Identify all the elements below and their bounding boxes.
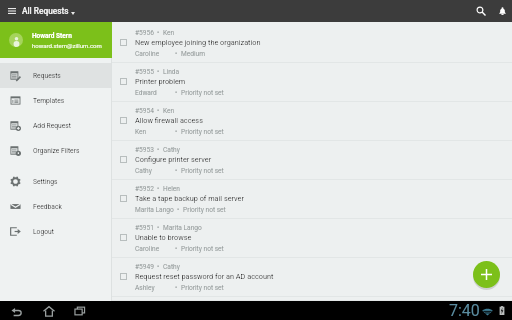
button[interactable]: Settings	[0, 169, 112, 194]
button[interactable]: Feedback	[0, 194, 112, 219]
button[interactable]: Select request	[117, 192, 130, 205]
button[interactable]: Select request	[112, 258, 512, 297]
staticText: Request reset password for an AD account	[135, 272, 274, 281]
staticText: •	[157, 68, 160, 76]
staticText: howard.stern@zillum.com	[32, 42, 102, 49]
button[interactable]: Requests	[0, 63, 112, 88]
button[interactable]: Select request	[112, 297, 512, 301]
staticText: •	[175, 167, 178, 175]
staticText: Ken	[163, 107, 175, 115]
staticText: Priority not set	[183, 206, 226, 214]
button[interactable]: Back	[7, 301, 27, 320]
staticText: •	[157, 107, 160, 115]
staticText: •	[157, 263, 160, 271]
staticText: •	[157, 29, 160, 37]
staticText: •	[175, 245, 178, 253]
button[interactable]: Add request	[473, 261, 500, 288]
button[interactable]: All Requests	[22, 0, 79, 22]
staticText: Priority not set	[181, 167, 224, 175]
staticText: •	[177, 206, 180, 214]
staticText: Ken	[163, 29, 175, 37]
button[interactable]: Select request	[112, 180, 512, 219]
button[interactable]: Open navigation drawer	[0, 0, 24, 22]
staticText: Requests	[33, 72, 61, 80]
staticText: Templates	[33, 97, 65, 105]
button[interactable]: Select request	[117, 75, 130, 88]
staticText: #5951	[135, 224, 154, 232]
staticText: Ken	[135, 128, 147, 136]
staticText: #5952	[135, 185, 154, 193]
staticText: Edward	[135, 89, 157, 97]
staticText: •	[175, 89, 178, 97]
staticText: #5955	[135, 68, 154, 76]
staticText: Priority not set	[181, 284, 224, 292]
staticText: Cathy	[163, 146, 180, 154]
staticText: #5949	[135, 263, 154, 271]
staticText: Medium	[181, 50, 205, 58]
button[interactable]: Organize Filters	[0, 138, 112, 163]
staticText: •	[157, 185, 160, 193]
button[interactable]: Select request	[112, 102, 512, 141]
staticText: Settings	[33, 178, 58, 186]
staticText: Priority not set	[181, 89, 224, 97]
staticText: All Requests	[22, 6, 69, 16]
button[interactable]: Select request	[112, 63, 512, 102]
button[interactable]: Select request	[117, 153, 130, 166]
staticText: Marita Lango	[163, 224, 202, 232]
staticText: Organize Filters	[33, 147, 80, 155]
button[interactable]: Select request	[112, 141, 512, 180]
staticText: •	[175, 128, 178, 136]
staticText: Helen	[163, 185, 180, 193]
button[interactable]: Select request	[112, 219, 512, 258]
staticText: •	[175, 284, 178, 292]
staticText: Caroline	[135, 50, 160, 58]
button[interactable]: Select request	[112, 24, 512, 63]
staticText: Cathy	[163, 263, 180, 271]
staticText: Take a tape backup of mail server	[135, 194, 244, 203]
staticText: #5954	[135, 107, 154, 115]
staticText: Cathy	[135, 167, 152, 175]
staticText: Configure printer server	[135, 155, 212, 164]
button[interactable]: Select request	[117, 270, 130, 283]
staticText: Add Request	[33, 122, 71, 130]
staticText: Feedback	[33, 203, 62, 211]
button[interactable]: Notifications	[491, 0, 512, 22]
staticText: #5953	[135, 146, 154, 154]
button[interactable]: Howard Stern	[0, 22, 112, 58]
button[interactable]: Templates	[0, 88, 112, 113]
button[interactable]: Select request	[117, 36, 130, 49]
staticText: Linda	[163, 68, 180, 76]
staticText: Caroline	[135, 245, 160, 253]
staticText: 7:40	[449, 301, 480, 320]
staticText: •	[175, 50, 178, 58]
staticText: •	[157, 224, 160, 232]
button[interactable]: Search	[470, 0, 492, 22]
button[interactable]: Select request	[117, 231, 130, 244]
staticText: Priority not set	[181, 128, 224, 136]
button[interactable]: Select request	[117, 114, 130, 127]
button[interactable]: Add Request	[0, 113, 112, 138]
staticText: Priority not set	[181, 245, 224, 253]
staticText: Allow firewall access	[135, 116, 203, 125]
staticText: •	[157, 146, 160, 154]
staticText: #5956	[135, 29, 154, 37]
staticText: Unable to browse	[135, 233, 192, 242]
button[interactable]: Home	[39, 301, 59, 320]
staticText: Printer problem	[135, 77, 186, 86]
button[interactable]: Recent apps	[70, 301, 90, 320]
button[interactable]: Logout	[0, 219, 112, 244]
staticText: Ashley	[135, 284, 155, 292]
staticText: Howard Stern	[32, 32, 72, 40]
staticText: Marita Lango	[135, 206, 174, 214]
staticText: Logout	[33, 228, 54, 236]
staticText: New employee joining the organization	[135, 38, 261, 47]
